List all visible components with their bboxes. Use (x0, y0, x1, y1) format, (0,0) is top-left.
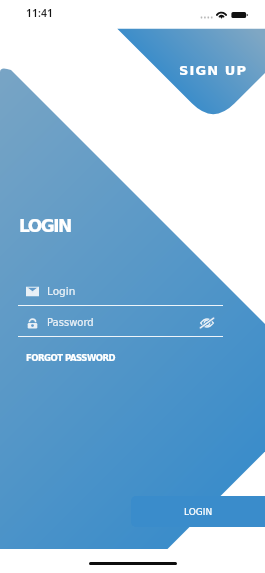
button[interactable]: FORGOT PASSWORD (26, 353, 116, 363)
staticText: Login (47, 285, 76, 297)
staticText: Password (47, 317, 94, 329)
staticText: LOGIN (184, 507, 213, 517)
button[interactable]: Show password (200, 318, 214, 328)
button[interactable]: Login (26, 283, 215, 299)
button[interactable]: LOGIN (131, 496, 265, 527)
button[interactable]: Password (26, 315, 215, 331)
staticText: 11:41 (26, 6, 53, 20)
staticText: LOGIN (19, 216, 71, 236)
button[interactable]: SIGN UP (179, 63, 248, 78)
